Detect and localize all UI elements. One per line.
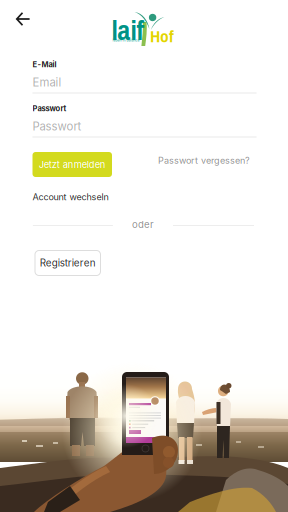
staticText: Email xyxy=(32,75,61,89)
button[interactable]: Account wechseln xyxy=(32,190,110,204)
staticText: leben in balance xyxy=(112,38,139,42)
staticText: Account wechseln xyxy=(32,191,108,202)
button[interactable]: Jetzt anmelden xyxy=(32,152,112,177)
staticText: E-Mail xyxy=(32,60,56,69)
staticText: Hof xyxy=(150,24,174,48)
staticText: Registrieren xyxy=(40,257,96,269)
staticText: Jetzt anmelden xyxy=(39,159,106,170)
staticText: Passwort xyxy=(32,104,66,113)
staticText: oder xyxy=(132,219,154,230)
button[interactable]: Registrieren xyxy=(35,250,100,275)
button[interactable]: Back xyxy=(6,3,40,35)
staticText: Passwort vergessen? xyxy=(158,155,250,166)
staticText: laif xyxy=(111,11,144,49)
button[interactable]: Passwort vergessen? xyxy=(158,152,250,168)
staticText: Passwort xyxy=(32,119,81,133)
